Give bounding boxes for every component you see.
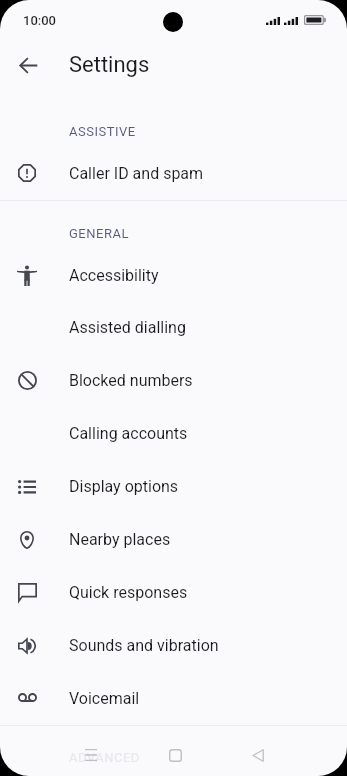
staticText: Quick responses — [69, 583, 188, 602]
button[interactable]: Accessibility — [0, 249, 347, 302]
staticText: Nearby places — [69, 530, 171, 549]
button[interactable]: Voicemail — [0, 672, 347, 725]
button[interactable]: Nearby places — [0, 513, 347, 566]
button[interactable]: Recent apps — [71, 741, 111, 769]
staticText: Accessibility — [69, 266, 159, 285]
button[interactable]: Back — [238, 741, 278, 769]
button[interactable]: Home — [155, 741, 195, 769]
staticText: ASSISTIVE — [69, 124, 136, 139]
staticText: Assisted dialling — [69, 318, 186, 337]
staticText: ADVANCED — [69, 750, 140, 765]
staticText: Voicemail — [69, 689, 140, 708]
button[interactable]: Blocked numbers — [0, 354, 347, 407]
button[interactable]: Sounds and vibration — [0, 619, 347, 672]
button[interactable]: Caller ID and spam — [0, 147, 347, 200]
staticText: Sounds and vibration — [69, 636, 219, 655]
button[interactable]: Display options — [0, 460, 347, 513]
staticText: GENERAL — [69, 226, 129, 241]
button[interactable]: Navigate up — [8, 45, 48, 85]
staticText: Calling accounts — [69, 424, 188, 443]
staticText: Settings — [69, 52, 150, 78]
staticText: 10:00 — [23, 13, 56, 28]
button[interactable]: Calling accounts — [0, 407, 347, 460]
staticText: Display options — [69, 477, 179, 496]
button[interactable]: Quick responses — [0, 566, 347, 619]
button[interactable]: Assisted dialling — [0, 301, 347, 354]
staticText: Blocked numbers — [69, 371, 193, 390]
staticText: Caller ID and spam — [69, 164, 204, 183]
